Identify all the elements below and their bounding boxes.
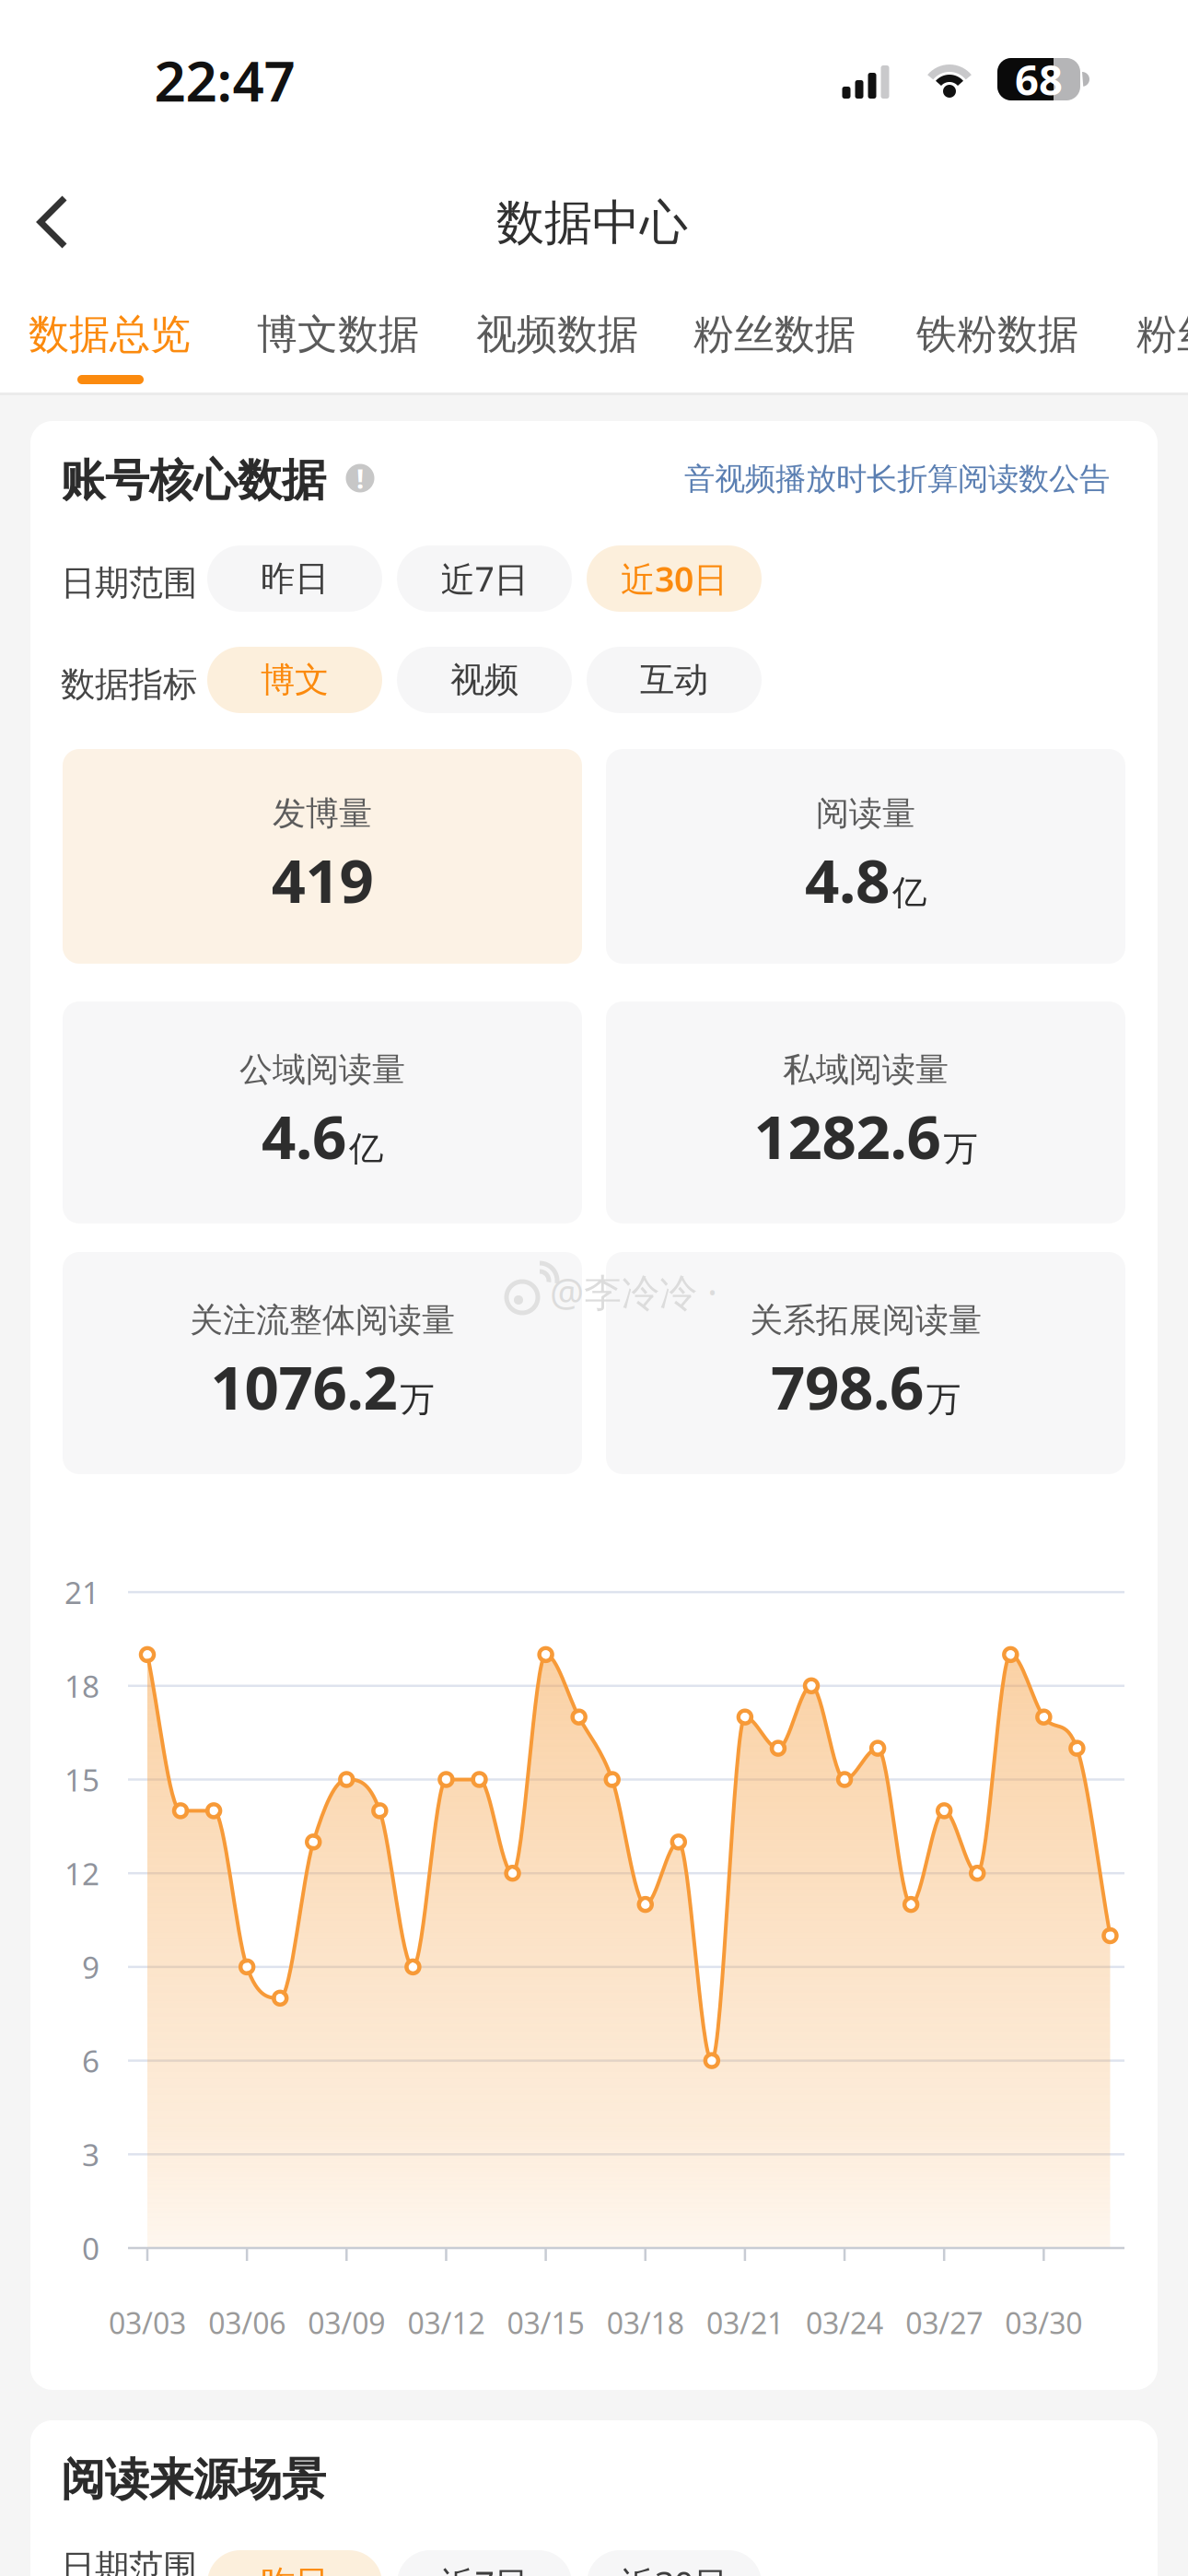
staticText: 万 xyxy=(943,1128,978,1170)
staticText: 1282.6 xyxy=(754,1096,941,1176)
staticText: 03/12 xyxy=(407,2303,485,2342)
staticText: 视频 xyxy=(450,659,518,701)
staticText: 419 xyxy=(271,840,373,919)
staticText: 6 xyxy=(82,2040,99,2081)
button[interactable]: 互动 xyxy=(587,647,762,713)
button[interactable]: 发博量 xyxy=(63,749,582,964)
staticText: 关系拓展阅读量 xyxy=(750,1300,982,1341)
button[interactable]: 近30日 xyxy=(587,545,762,612)
staticText: 03/18 xyxy=(607,2303,684,2342)
staticText: 近7日 xyxy=(441,556,528,601)
staticText: 音视频播放时长折算阅读数公告 xyxy=(684,460,1110,498)
button[interactable]: 博文 xyxy=(207,647,382,713)
button[interactable]: 账号核心数据说明 xyxy=(346,460,374,496)
button[interactable]: 公域阅读量 xyxy=(63,1001,582,1224)
staticText: 03/03 xyxy=(109,2303,186,2342)
button[interactable]: 近30日 xyxy=(587,2550,762,2576)
staticText: 昨日 xyxy=(261,2562,329,2576)
staticText: 数据中心 xyxy=(496,194,688,252)
staticText: 03/15 xyxy=(507,2303,584,2342)
staticText: 3 xyxy=(82,2134,99,2175)
staticText: 账号核心数据 xyxy=(61,453,326,508)
button[interactable]: 博文数据 xyxy=(257,310,419,359)
staticText: 互动 xyxy=(640,659,708,701)
staticText: 博文数据 xyxy=(257,310,419,359)
button[interactable]: 视频数据 xyxy=(476,310,638,359)
button[interactable]: 阅读量 xyxy=(606,749,1125,964)
button[interactable]: 昨日 xyxy=(207,2550,382,2576)
staticText: 数据总览 xyxy=(29,310,191,359)
button[interactable]: 铁粉数据 xyxy=(916,310,1078,359)
button[interactable]: 关系拓展阅读量 xyxy=(606,1252,1125,1474)
staticText: 昨日 xyxy=(261,557,329,600)
staticText: 万 xyxy=(400,1378,434,1421)
staticText: 9 xyxy=(82,1947,99,1987)
staticText: 68 xyxy=(1015,52,1063,107)
staticText: 4.8 xyxy=(805,840,890,919)
staticText: 亿 xyxy=(349,1128,383,1170)
button[interactable]: 关注流整体阅读量 xyxy=(63,1252,582,1474)
staticText: 近7日 xyxy=(441,2561,528,2576)
staticText: 12 xyxy=(64,1853,99,1894)
staticText: 03/21 xyxy=(706,2303,784,2342)
button[interactable]: 昨日 xyxy=(207,545,382,612)
staticText: 铁粉数据 xyxy=(916,310,1078,359)
staticText: 日期范围 xyxy=(61,2547,197,2576)
button[interactable]: 粉丝数据 xyxy=(693,310,856,359)
staticText: 18 xyxy=(64,1665,99,1706)
staticText: 亿 xyxy=(892,872,926,914)
staticText: 粉丝活跃 xyxy=(1136,310,1188,359)
staticText: ! xyxy=(356,460,364,496)
staticText: 关注流整体阅读量 xyxy=(190,1300,455,1341)
button[interactable]: 近7日 xyxy=(397,2550,572,2576)
staticText: 1076.2 xyxy=(210,1346,397,1426)
staticText: 数据指标 xyxy=(61,663,197,706)
staticText: 粉丝数据 xyxy=(693,310,856,359)
staticText: 03/09 xyxy=(308,2303,385,2342)
staticText: 阅读来源场景 xyxy=(61,2453,326,2507)
staticText: 日期范围 xyxy=(61,562,197,604)
button[interactable]: 私域阅读量 xyxy=(606,1001,1125,1224)
staticText: 03/30 xyxy=(1005,2303,1082,2342)
staticText: 公域阅读量 xyxy=(239,1049,405,1090)
staticText: 03/27 xyxy=(905,2303,983,2342)
staticText: 视频数据 xyxy=(476,310,638,359)
staticText: 博文 xyxy=(261,659,329,701)
staticText: 798.6 xyxy=(771,1346,924,1426)
staticText: 4.6 xyxy=(262,1096,346,1176)
button[interactable]: 音视频播放时长折算阅读数公告 xyxy=(684,460,1110,498)
button[interactable]: 视频 xyxy=(397,647,572,713)
staticText: 22:47 xyxy=(154,43,295,117)
staticText: 15 xyxy=(64,1759,99,1800)
staticText: 近30日 xyxy=(621,2561,728,2576)
button[interactable]: 粉丝活跃 xyxy=(1136,310,1188,359)
staticText: 0 xyxy=(82,2228,99,2268)
staticText: 阅读量 xyxy=(816,793,915,834)
staticText: @李冷冷 · xyxy=(550,1266,717,1317)
staticText: 03/06 xyxy=(208,2303,286,2342)
staticText: 21 xyxy=(64,1572,99,1613)
staticText: 03/24 xyxy=(806,2303,883,2342)
staticText: 万 xyxy=(926,1378,961,1421)
button[interactable]: 返回 xyxy=(18,187,87,257)
staticText: 私域阅读量 xyxy=(783,1049,949,1090)
button[interactable]: 近7日 xyxy=(397,545,572,612)
staticText: 发博量 xyxy=(273,793,372,834)
button[interactable]: 数据总览 xyxy=(29,310,191,359)
staticText: 近30日 xyxy=(621,556,728,601)
